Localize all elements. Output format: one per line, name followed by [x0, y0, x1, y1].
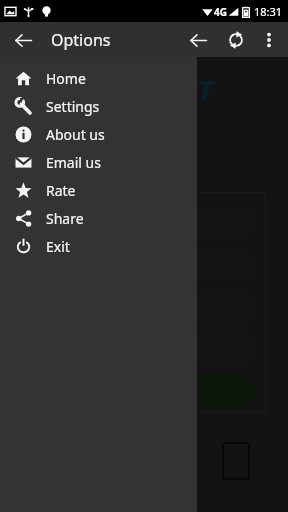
button[interactable]: About us: [0, 120, 197, 148]
staticText: 18:31: [254, 4, 283, 19]
button[interactable]: Email us: [0, 148, 197, 176]
button[interactable]: Exit: [0, 232, 197, 260]
staticText: Email us: [46, 153, 101, 172]
staticText: Exit: [46, 237, 70, 256]
button[interactable]: Share: [0, 204, 197, 232]
button[interactable]: Home: [0, 64, 197, 92]
button[interactable]: Rate: [0, 176, 197, 204]
button[interactable]: Back: [9, 26, 37, 54]
staticText: Settings: [46, 97, 100, 116]
staticText: Options: [51, 29, 111, 51]
staticText: About us: [46, 125, 105, 144]
staticText: Rate: [46, 181, 76, 200]
button[interactable]: Back: [183, 25, 213, 55]
button[interactable]: More options: [254, 25, 284, 55]
staticText: Canada: [50, 214, 97, 232]
staticText: SPEEDTEST: [74, 71, 214, 108]
staticText: 4G: [214, 5, 227, 19]
button[interactable]: Refresh: [221, 25, 251, 55]
button[interactable]: Settings: [0, 92, 197, 120]
staticText: Share: [46, 209, 84, 228]
staticText: Home: [46, 69, 86, 88]
